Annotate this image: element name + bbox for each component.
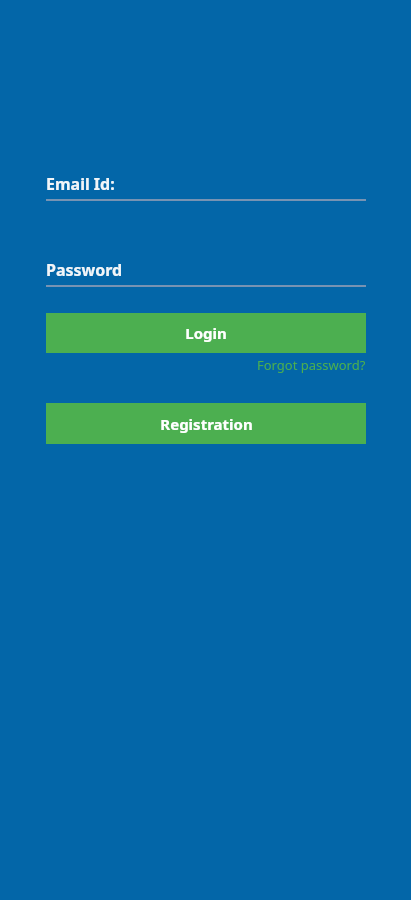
staticText: Forgot password?: [257, 356, 366, 374]
button[interactable]: Password: [46, 254, 366, 285]
staticText: Password: [46, 259, 123, 281]
staticText: Login: [185, 323, 227, 343]
staticText: Registration: [160, 414, 253, 434]
button[interactable]: Forgot password?: [257, 355, 366, 375]
staticText: Email Id:: [46, 173, 115, 195]
button[interactable]: Email Id:: [46, 168, 366, 199]
button[interactable]: Login: [46, 313, 366, 353]
button[interactable]: Registration: [46, 403, 366, 444]
